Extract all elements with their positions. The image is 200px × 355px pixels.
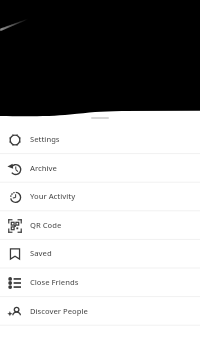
staticText: Settings: [30, 134, 60, 144]
staticText: Archive: [30, 163, 57, 173]
button[interactable]: Your Activity: [0, 182, 200, 211]
button[interactable]: QR Code: [0, 211, 200, 240]
button[interactable]: Archive: [0, 154, 200, 183]
button[interactable]: Close Friends: [0, 268, 200, 297]
staticText: Discover People: [30, 306, 88, 316]
button[interactable]: Saved: [0, 239, 200, 268]
button[interactable]: Discover People: [0, 297, 200, 326]
button[interactable]: Settings: [0, 125, 200, 154]
staticText: Close Friends: [30, 277, 79, 287]
staticText: Saved: [30, 248, 52, 258]
staticText: Your Activity: [30, 191, 76, 201]
staticText: QR Code: [30, 220, 62, 230]
